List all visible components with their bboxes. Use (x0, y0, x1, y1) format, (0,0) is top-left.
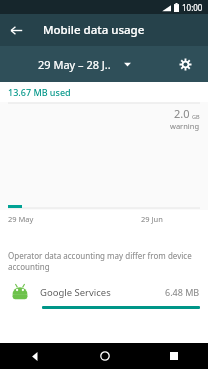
staticText: GB (192, 113, 200, 120)
staticText: Mobile data usage (43, 22, 145, 38)
staticText: 29 Jun (141, 214, 163, 224)
button[interactable]: Google Services (0, 278, 208, 309)
button[interactable]: Settings (172, 51, 198, 77)
staticText: 29 May – 28 J.. (38, 57, 111, 72)
button[interactable]: 29 May – 28 J.. (38, 57, 131, 72)
staticText: 29 May (8, 214, 34, 224)
staticText: 2.0 (174, 106, 190, 121)
button[interactable]: Back (0, 14, 32, 46)
staticText: Operator data accounting may differ from… (8, 250, 196, 272)
button[interactable]: Home (70, 343, 139, 369)
staticText: 10:00 (182, 2, 203, 13)
button[interactable]: Back (0, 343, 70, 369)
staticText: 13.67 MB used (8, 86, 71, 98)
staticText: 6.48 MB (165, 286, 200, 298)
staticText: Google Services (40, 286, 111, 299)
button[interactable]: Recent apps (139, 343, 208, 369)
staticText: warning (170, 121, 200, 131)
